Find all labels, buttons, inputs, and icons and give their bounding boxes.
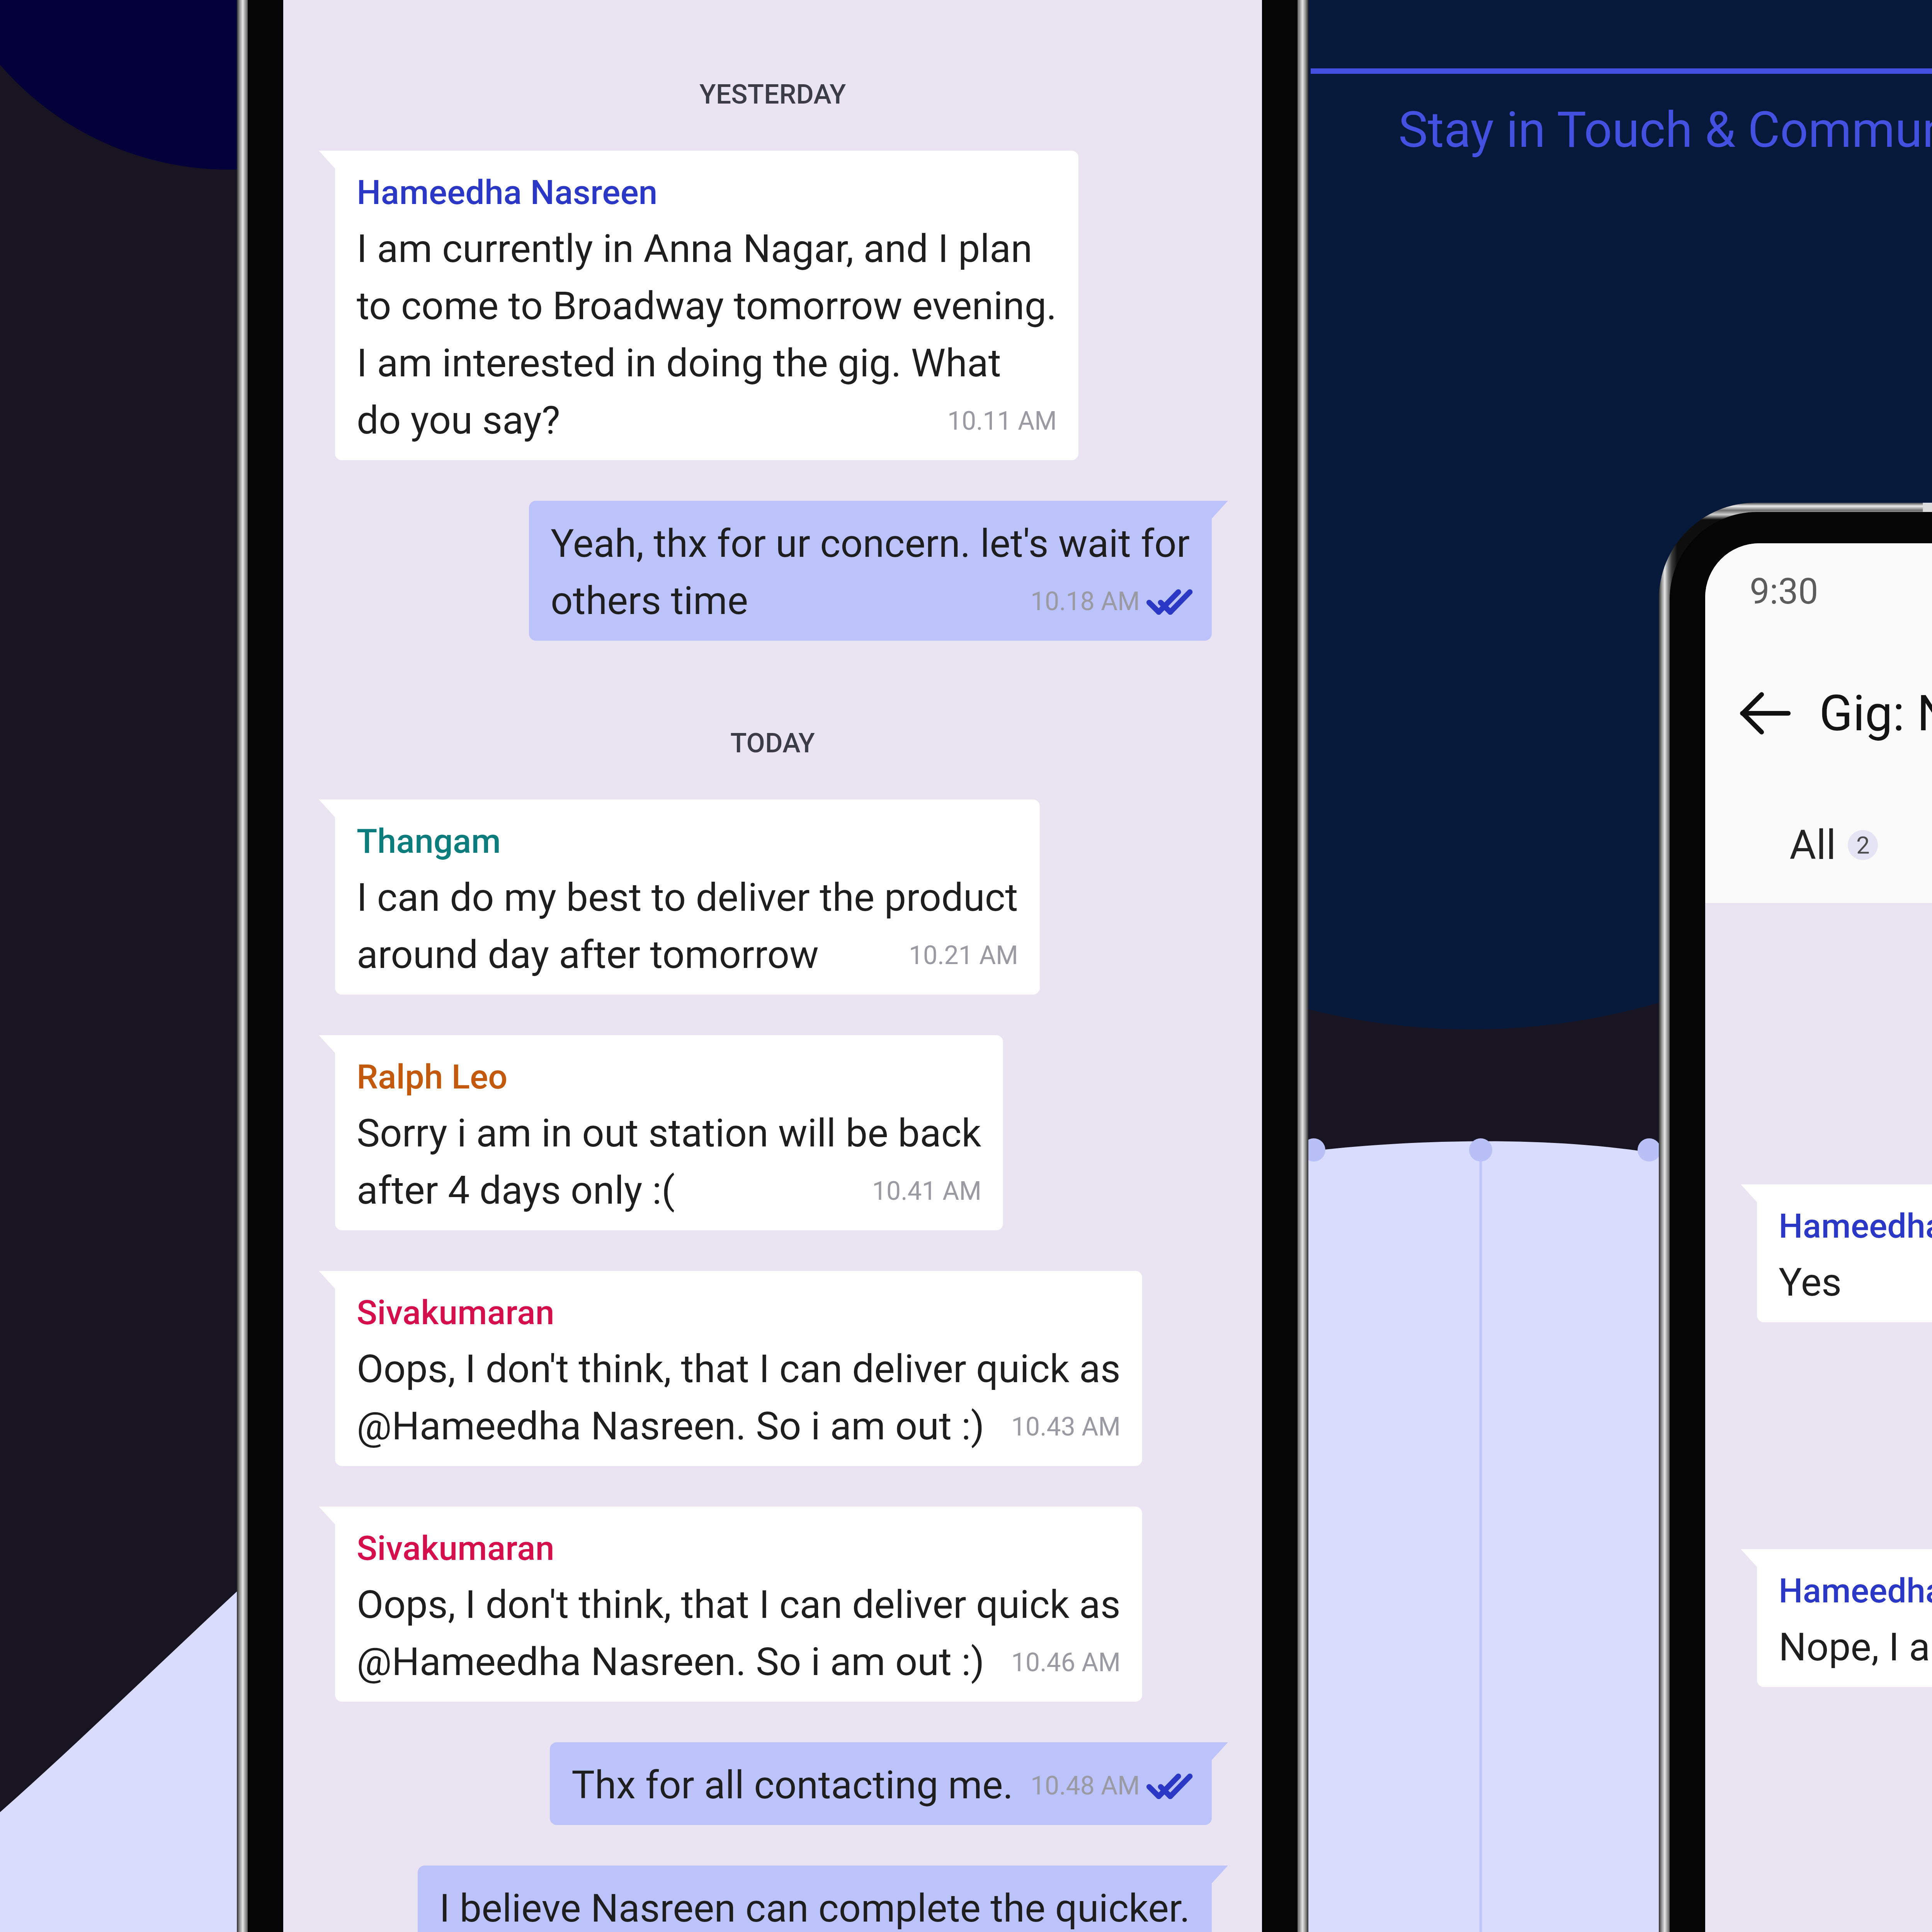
staticText: Ralph Leo — [357, 1057, 508, 1097]
staticText: around day after tomorrow — [357, 932, 819, 977]
staticText: I believe Nasreen can complete the quick… — [439, 1885, 1190, 1931]
button[interactable]: I believe Nasreen can complete the quick… — [418, 1866, 1228, 1932]
staticText: @Hameedha Nasreen. So i am out :) — [357, 1403, 985, 1449]
staticText: Gig: Need to purchase 5kg… — [1819, 684, 1932, 742]
staticText: TODAY — [730, 727, 815, 759]
staticText: Oops, I don't think, that I can deliver … — [357, 1346, 1121, 1391]
staticText: I am currently in Anna Nagar, and I plan — [357, 226, 1032, 271]
staticText: Hameedha Nasreen — [1779, 1571, 1932, 1611]
staticText: 10.41 AM — [872, 1176, 981, 1206]
button[interactable]: Ralph Leo — [319, 1035, 1003, 1230]
staticText: 9:30 — [1750, 571, 1818, 612]
staticText: others time — [551, 578, 748, 623]
staticText: Oops, I don't think, that I can deliver … — [357, 1582, 1121, 1627]
staticText: after 4 days only :( — [357, 1167, 675, 1213]
button[interactable]: Thangam — [319, 799, 1040, 995]
button[interactable]: Sivakumaran — [319, 1271, 1142, 1466]
staticText: Thangam — [357, 821, 501, 861]
staticText: All — [1789, 821, 1836, 869]
staticText: to come to Broadway tomorrow evening. — [357, 283, 1057, 328]
button[interactable]: Thx for all contacting me. — [550, 1742, 1228, 1825]
button[interactable]: Hameedha Nasreen — [1741, 1184, 1932, 1322]
staticText: 10.18 AM — [1031, 587, 1140, 616]
staticText: 10.48 AM — [1031, 1771, 1140, 1801]
staticText: Thx for all contacting me. — [571, 1762, 1014, 1808]
staticText: YESTERDAY — [699, 78, 846, 110]
staticText: 10.46 AM — [1011, 1648, 1121, 1677]
staticText: Hameedha Nasreen — [1779, 1206, 1932, 1246]
button[interactable]: Hameedha Nasreen — [1741, 1549, 1932, 1687]
staticText: I am interested in doing the gig. What — [357, 340, 1001, 386]
staticText: 10.21 AM — [909, 940, 1018, 970]
staticText: Nope, I am all clear. — [1779, 1624, 1932, 1670]
staticText: Sivakumaran — [357, 1528, 554, 1568]
button[interactable]: All — [1789, 821, 1878, 869]
staticText: Yes — [1779, 1259, 1842, 1305]
button[interactable]: Yeah, thx for ur concern. let's wait for — [529, 501, 1228, 641]
staticText: Sivakumaran — [357, 1293, 554, 1332]
staticText: Hameedha Nasreen — [357, 172, 658, 212]
staticText: Stay in Touch & Communicate! — [1398, 101, 1932, 159]
staticText: @Hameedha Nasreen. So i am out :) — [357, 1639, 985, 1684]
staticText: 2 — [1856, 831, 1870, 859]
button[interactable]: Sivakumaran — [319, 1507, 1142, 1702]
button[interactable]: Back — [1726, 675, 1804, 752]
staticText: 10.43 AM — [1011, 1412, 1121, 1442]
staticText: do you say? — [357, 397, 560, 443]
staticText: 10.11 AM — [947, 406, 1057, 436]
staticText: I can do my best to deliver the product — [357, 874, 1018, 920]
staticText: Sorry i am in out station will be back — [357, 1110, 981, 1156]
button[interactable]: Hameedha Nasreen — [319, 151, 1078, 460]
staticText: Yeah, thx for ur concern. let's wait for — [551, 520, 1190, 566]
